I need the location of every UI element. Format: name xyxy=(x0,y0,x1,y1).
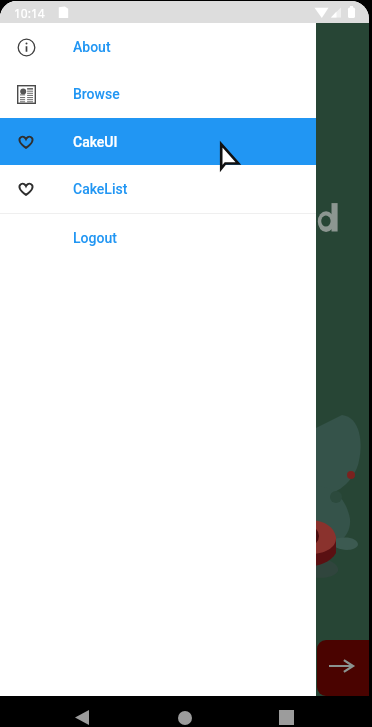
button[interactable]: Browse xyxy=(0,70,316,118)
button[interactable]: Next xyxy=(317,640,369,696)
button[interactable]: About xyxy=(0,23,316,70)
button[interactable]: CakeList xyxy=(0,165,316,213)
staticText: 10:14 xyxy=(14,5,45,21)
button[interactable]: Logout xyxy=(0,214,316,261)
staticText: Logout xyxy=(73,230,117,246)
button[interactable]: Home xyxy=(163,702,207,727)
button[interactable]: Back xyxy=(60,702,104,727)
staticText: CakeUI xyxy=(73,134,118,150)
button[interactable]: Recent apps xyxy=(264,702,308,727)
button[interactable]: CakeUI xyxy=(0,118,316,165)
staticText: About xyxy=(73,39,111,55)
staticText: CakeList xyxy=(73,181,128,197)
staticText: Browse xyxy=(73,86,120,102)
